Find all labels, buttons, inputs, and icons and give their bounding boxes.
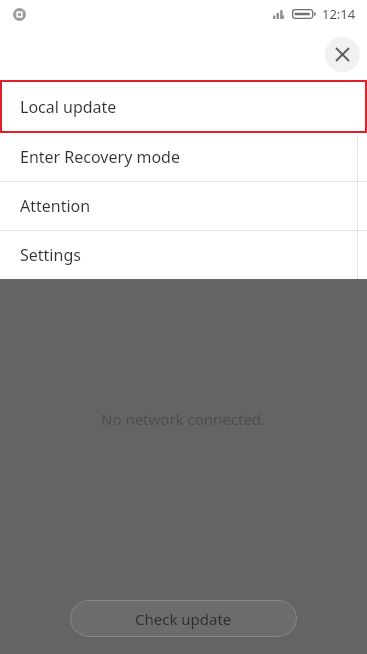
staticText: Enter Recovery mode xyxy=(20,146,180,168)
button[interactable]: Attention xyxy=(0,182,367,230)
button[interactable]: Check update xyxy=(70,600,297,637)
staticText: Local update xyxy=(20,96,117,118)
button[interactable]: Local update xyxy=(0,80,367,133)
staticText: Check update xyxy=(135,609,232,629)
staticText: 12:14 xyxy=(322,5,356,23)
staticText: No network connected. xyxy=(101,409,266,429)
button[interactable]: Close xyxy=(325,37,360,72)
button[interactable]: Settings xyxy=(0,231,367,279)
staticText: Settings xyxy=(20,244,81,266)
staticText: Attention xyxy=(20,195,91,217)
button[interactable]: Enter Recovery mode xyxy=(0,133,367,181)
